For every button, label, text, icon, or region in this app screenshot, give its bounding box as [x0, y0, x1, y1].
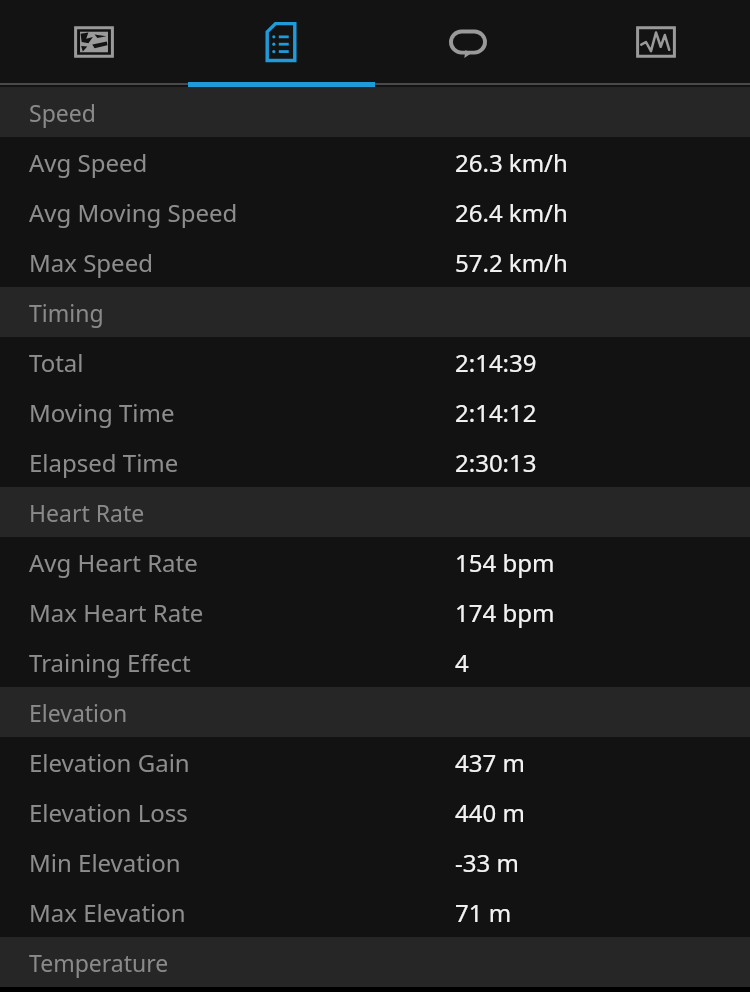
- staticText: 437 m: [455, 746, 525, 779]
- staticText: 4: [455, 646, 469, 679]
- staticText: -33 m: [455, 846, 519, 879]
- button[interactable]: Charts: [562, 0, 750, 84]
- button[interactable]: Elevation: [0, 687, 750, 737]
- button[interactable]: Elapsed Time: [0, 437, 750, 487]
- staticText: Moving Time: [29, 396, 175, 429]
- staticText: 26.3 km/h: [455, 146, 568, 179]
- button[interactable]: Map: [0, 0, 187, 84]
- staticText: 26.4 km/h: [455, 196, 568, 229]
- staticText: 2:14:39: [455, 346, 537, 379]
- button[interactable]: Laps: [374, 0, 562, 84]
- button[interactable]: Moving Time: [0, 387, 750, 437]
- button[interactable]: Elevation Gain: [0, 737, 750, 787]
- button[interactable]: Max Elevation: [0, 887, 750, 937]
- button[interactable]: Temperature: [0, 937, 750, 987]
- staticText: 57.2 km/h: [455, 246, 568, 279]
- button[interactable]: Elevation Loss: [0, 787, 750, 837]
- staticText: Elevation: [29, 697, 128, 728]
- staticText: Heart Rate: [29, 497, 145, 528]
- button[interactable]: Training Effect: [0, 637, 750, 687]
- staticText: Avg Heart Rate: [29, 546, 198, 579]
- staticText: Timing: [29, 297, 104, 328]
- staticText: 71 m: [455, 896, 512, 929]
- staticText: 2:30:13: [455, 446, 537, 479]
- button[interactable]: Timing: [0, 287, 750, 337]
- staticText: Min Elevation: [29, 846, 181, 879]
- button[interactable]: Total: [0, 337, 750, 387]
- staticText: Temperature: [29, 947, 169, 978]
- button[interactable]: Min Elevation: [0, 837, 750, 887]
- staticText: 2:14:12: [455, 396, 537, 429]
- staticText: Avg Speed: [29, 146, 148, 179]
- staticText: Elapsed Time: [29, 446, 179, 479]
- staticText: 440 m: [455, 796, 525, 829]
- button[interactable]: Avg Heart Rate: [0, 537, 750, 587]
- staticText: Elevation Gain: [29, 746, 190, 779]
- staticText: Elevation Loss: [29, 796, 188, 829]
- staticText: Max Heart Rate: [29, 596, 204, 629]
- button[interactable]: Avg Speed: [0, 137, 750, 187]
- button[interactable]: Avg Moving Speed: [0, 187, 750, 237]
- staticText: Speed: [29, 97, 96, 128]
- staticText: Max Elevation: [29, 896, 186, 929]
- staticText: Avg Moving Speed: [29, 196, 238, 229]
- button[interactable]: Details: [187, 0, 374, 84]
- staticText: Total: [29, 346, 84, 379]
- staticText: 154 bpm: [455, 546, 555, 579]
- button[interactable]: Heart Rate: [0, 487, 750, 537]
- button[interactable]: Speed: [0, 87, 750, 137]
- staticText: Training Effect: [29, 646, 191, 679]
- staticText: 174 bpm: [455, 596, 555, 629]
- button[interactable]: Max Speed: [0, 237, 750, 287]
- staticText: Max Speed: [29, 246, 153, 279]
- button[interactable]: Max Heart Rate: [0, 587, 750, 637]
